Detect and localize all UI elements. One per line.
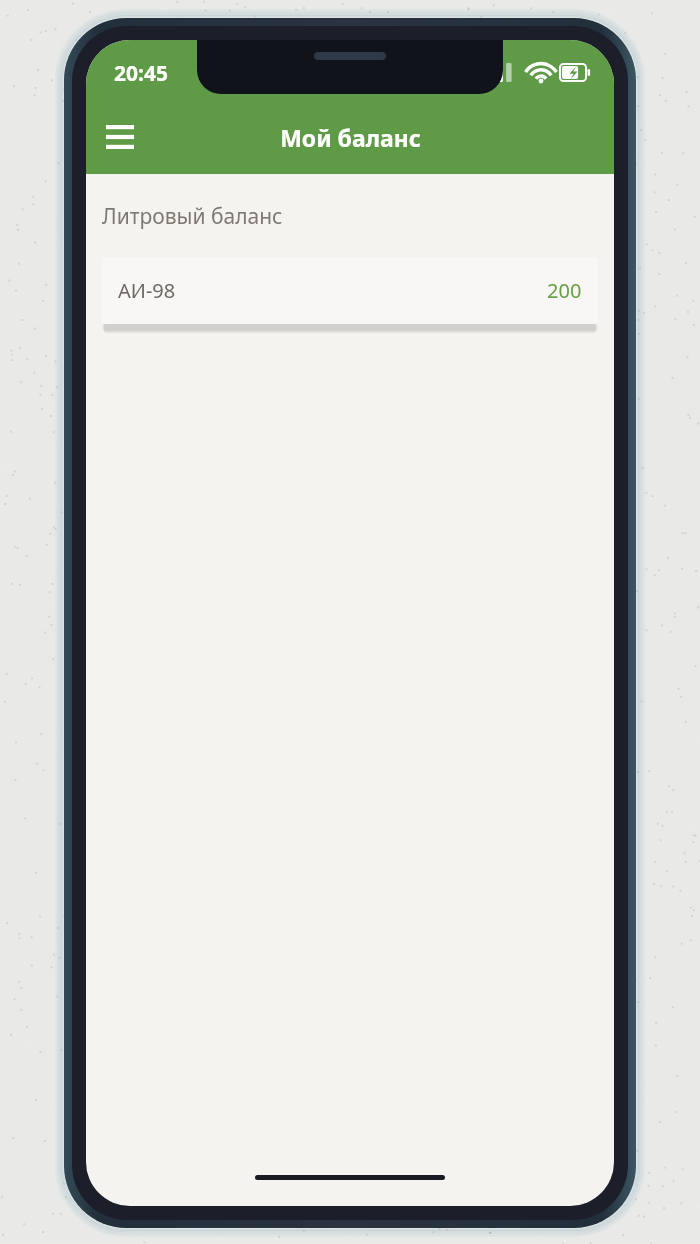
button[interactable]: АИ-98 (102, 257, 598, 324)
staticText: Литровый баланс (102, 202, 283, 231)
staticText: 200 (547, 277, 582, 304)
staticText: Мой баланс (280, 122, 421, 153)
staticText: АИ-98 (118, 277, 176, 304)
staticText: 20:45 (114, 59, 168, 88)
button[interactable]: Меню (94, 111, 146, 163)
